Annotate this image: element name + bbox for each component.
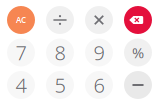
button[interactable]: Divide	[46, 6, 74, 34]
button[interactable]: Multiply	[85, 6, 113, 34]
button[interactable]: 8	[46, 38, 74, 66]
button[interactable]: 7	[7, 38, 35, 66]
staticText: 5	[54, 72, 65, 98]
button[interactable]: 9	[85, 38, 113, 66]
button[interactable]: Minus	[124, 71, 152, 99]
staticText: %	[132, 43, 144, 62]
staticText: 6	[93, 72, 104, 98]
button[interactable]: Delete	[124, 6, 152, 34]
staticText: 8	[54, 39, 65, 66]
staticText: 9	[93, 39, 104, 66]
button[interactable]: 4	[7, 71, 35, 99]
button[interactable]: Percent	[124, 38, 152, 66]
staticText: 7	[15, 39, 26, 66]
button[interactable]: 5	[46, 71, 74, 99]
staticText: AC	[16, 15, 26, 25]
button[interactable]: 6	[85, 71, 113, 99]
button[interactable]: All clear	[7, 6, 35, 34]
staticText: 4	[15, 72, 26, 98]
